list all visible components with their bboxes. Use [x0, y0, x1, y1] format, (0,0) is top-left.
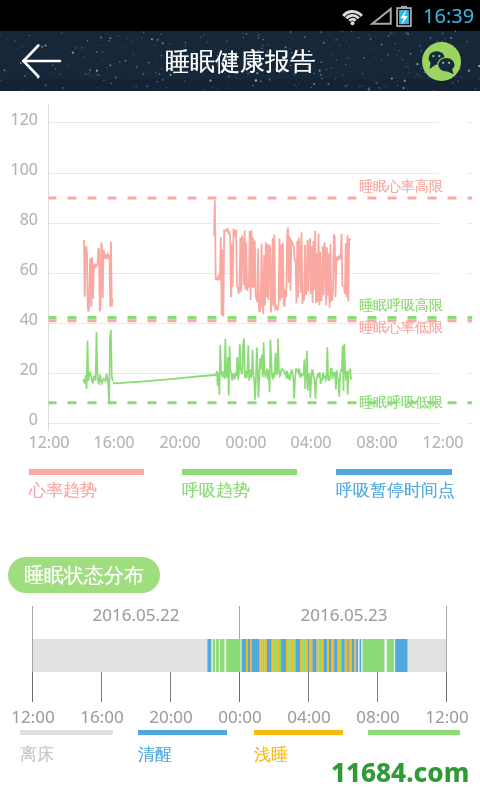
staticText: 00:00	[205, 705, 275, 728]
staticText: 08:00	[343, 705, 413, 728]
staticText: 睡眠状态分布	[24, 563, 144, 588]
staticText: 100	[0, 158, 38, 180]
staticText: 120	[0, 108, 38, 130]
button[interactable]: 浅睡	[254, 730, 343, 765]
staticText: 呼吸暂停时间点	[336, 480, 455, 501]
staticText: 16:00	[79, 431, 149, 453]
button[interactable]: 离床	[20, 730, 113, 765]
staticText: 清醒	[138, 744, 172, 765]
button[interactable]: 心率趋势	[29, 469, 144, 501]
staticText: 60	[0, 258, 38, 280]
staticText: 40	[0, 308, 38, 330]
button[interactable]: 呼吸暂停时间点	[336, 469, 455, 501]
staticText: 2016.05.22	[76, 603, 196, 626]
staticText: 睡眠健康报告	[165, 46, 315, 77]
staticText: 04:00	[274, 705, 344, 728]
staticText: 心率趋势	[29, 480, 97, 501]
staticText: 16:00	[67, 705, 137, 728]
staticText: 12:00	[408, 431, 478, 453]
staticText: 12:00	[0, 705, 68, 728]
staticText: 20:00	[145, 431, 215, 453]
staticText: 离床	[20, 744, 54, 765]
button[interactable]: 睡眠状态分布	[8, 557, 160, 593]
staticText: 16:39	[423, 2, 475, 29]
staticText: 睡眠呼吸高限	[359, 297, 443, 315]
staticText: 20	[0, 358, 38, 380]
staticText: 睡眠呼吸低限	[359, 394, 443, 412]
staticText: 04:00	[276, 431, 346, 453]
staticText: 浅睡	[254, 744, 288, 765]
staticText: 00:00	[211, 431, 281, 453]
staticText: 12:00	[412, 705, 480, 728]
staticText: 睡眠心率高限	[359, 178, 443, 196]
button[interactable]: Back	[14, 34, 68, 88]
staticText: 呼吸趋势	[182, 480, 250, 501]
staticText: 0	[0, 408, 38, 430]
staticText: 08:00	[342, 431, 412, 453]
staticText: 2016.05.23	[284, 603, 404, 626]
staticText: 80	[0, 208, 38, 230]
button[interactable]: 清醒	[138, 730, 227, 765]
button[interactable]: 呼吸趋势	[182, 469, 297, 501]
staticText: 睡眠心率低限	[359, 319, 443, 337]
staticText: 11684.com	[331, 754, 470, 789]
staticText: 20:00	[136, 705, 206, 728]
button[interactable]: WeChat	[422, 42, 461, 81]
staticText: 12:00	[14, 431, 84, 453]
